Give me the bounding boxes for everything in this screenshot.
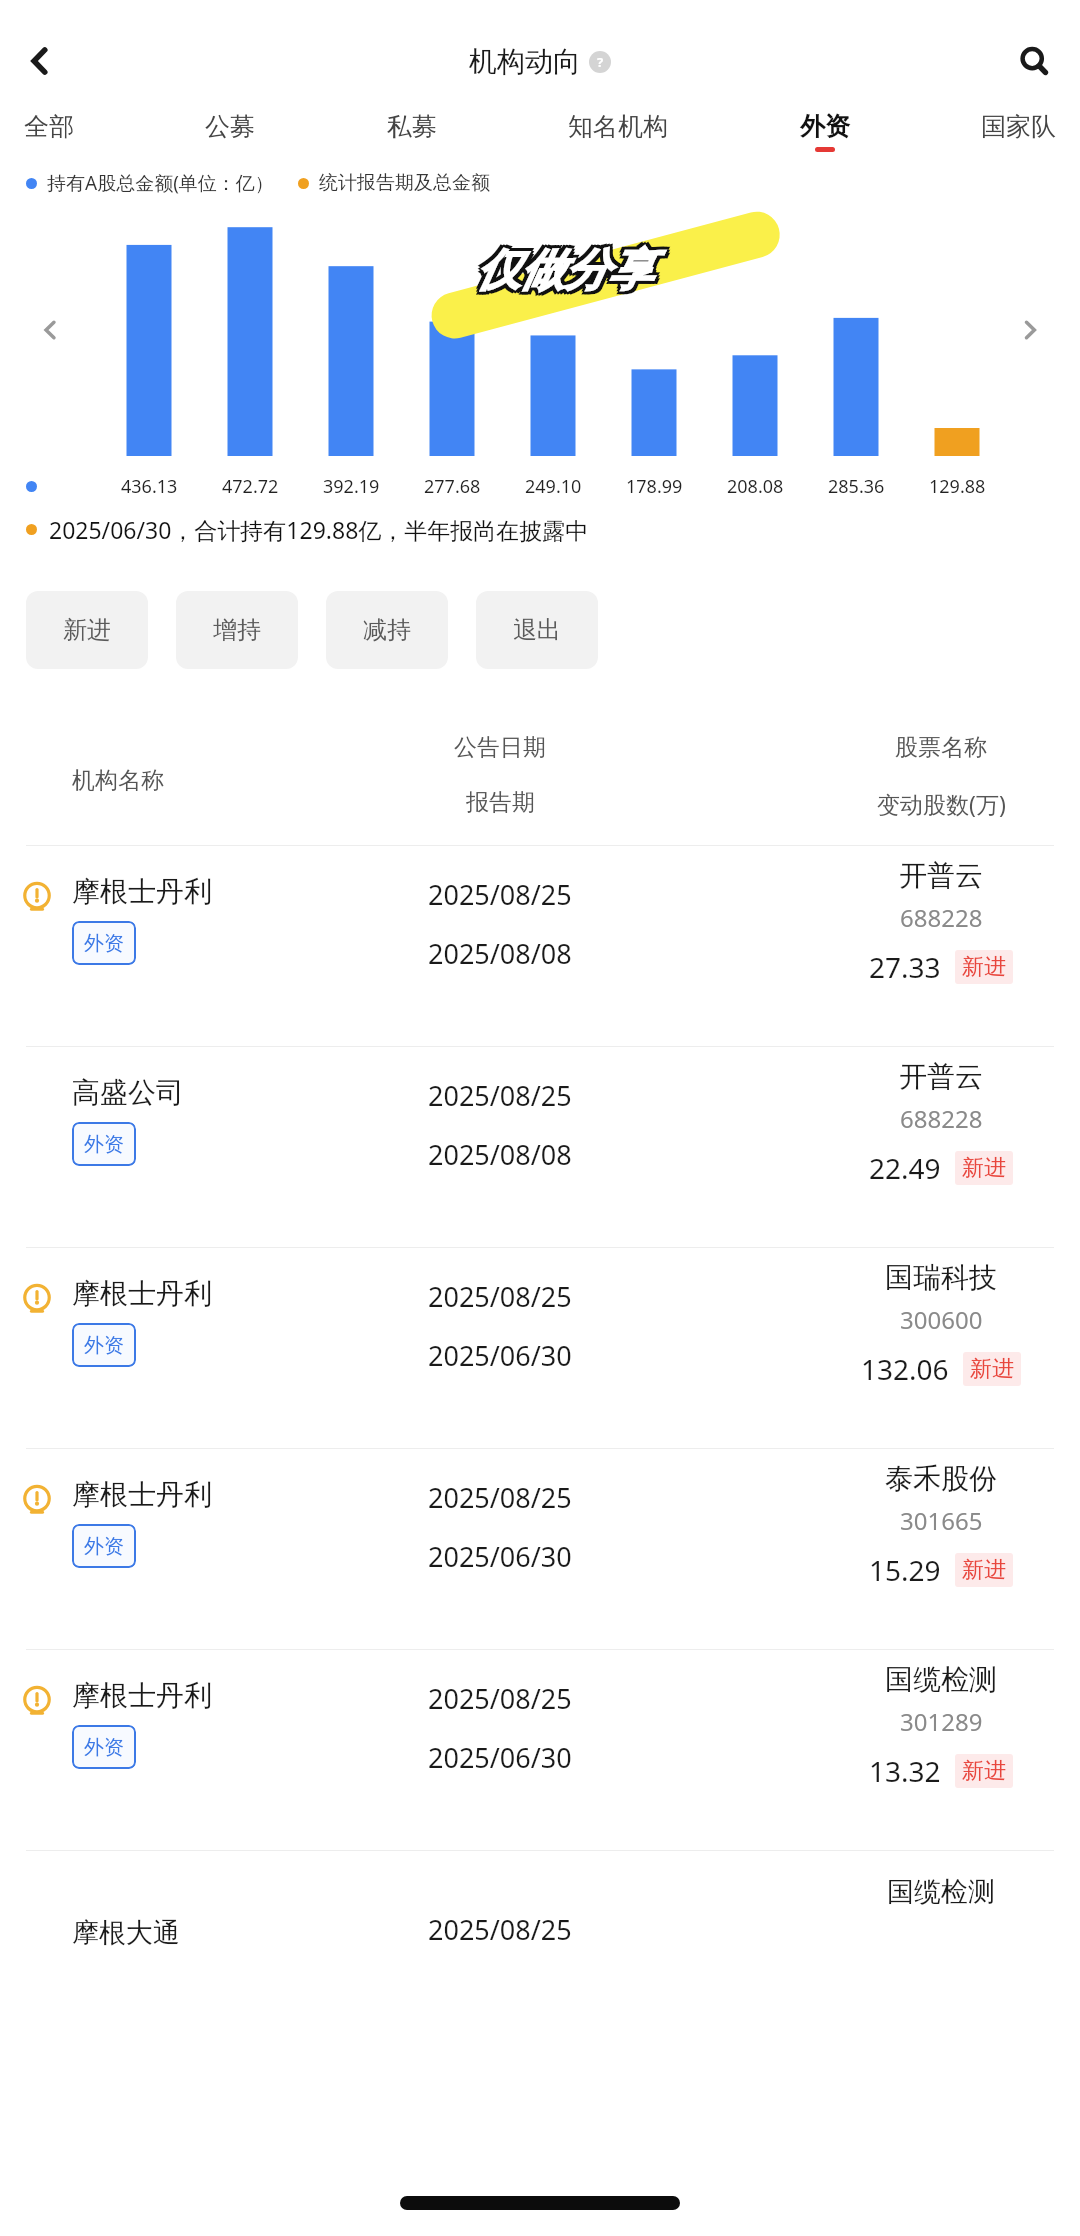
button[interactable]: 摩根士丹利 bbox=[0, 846, 1080, 1046]
staticText: 摩根士丹利 bbox=[72, 1477, 212, 1512]
staticText: 报告期 bbox=[466, 788, 535, 817]
staticText: 摩根士丹利 bbox=[72, 1276, 212, 1311]
button[interactable]: 外资 bbox=[72, 1323, 136, 1367]
staticText: 外资 bbox=[800, 111, 850, 142]
staticText: 2025/08/25 bbox=[428, 1680, 572, 1717]
staticText: 2025/08/08 bbox=[428, 1136, 572, 1173]
staticText: 国缆检测 bbox=[887, 1875, 995, 1909]
button[interactable]: 私募 bbox=[381, 107, 443, 156]
staticText: 国家队 bbox=[981, 111, 1056, 142]
staticText: 仅做分享 bbox=[479, 243, 655, 298]
button[interactable]: Next bbox=[1002, 302, 1058, 358]
button[interactable]: 知名机构 bbox=[562, 107, 674, 156]
button[interactable]: 外资 bbox=[72, 1524, 136, 1568]
staticText: 知名机构 bbox=[568, 111, 668, 142]
staticText: 国瑞科技 bbox=[885, 1260, 997, 1295]
staticText: 仅做分享 bbox=[476, 246, 652, 301]
staticText: 132.06 bbox=[861, 1350, 949, 1388]
staticText: 688228 bbox=[900, 1102, 983, 1135]
staticText: 国缆检测 bbox=[885, 1662, 997, 1697]
staticText: 外资 bbox=[84, 1534, 124, 1559]
staticText: 129.88 bbox=[929, 474, 986, 499]
staticText: 新进 bbox=[962, 953, 1006, 981]
staticText: 摩根士丹利 bbox=[72, 874, 212, 909]
staticText: 全部 bbox=[24, 111, 74, 142]
button[interactable]: 高盛公司 bbox=[0, 1047, 1080, 1247]
button[interactable]: 外资 bbox=[72, 1122, 136, 1166]
staticText: 436.13 bbox=[121, 474, 178, 499]
staticText: 新进 bbox=[970, 1355, 1014, 1383]
staticText: 开普云 bbox=[899, 858, 983, 893]
button[interactable]: Search bbox=[1002, 29, 1066, 93]
staticText: 2025/08/25 bbox=[428, 876, 572, 913]
staticText: 22.49 bbox=[869, 1149, 941, 1187]
button[interactable]: 退出 bbox=[476, 591, 598, 669]
staticText: 公告日期 bbox=[454, 733, 546, 762]
button[interactable]: 增持 bbox=[176, 591, 298, 669]
staticText: 仅做分享 bbox=[476, 240, 652, 295]
button[interactable]: 公募 bbox=[199, 107, 261, 156]
staticText: 退出 bbox=[513, 615, 561, 645]
staticText: 392.19 bbox=[323, 474, 380, 499]
staticText: 2025/06/30，合计持有129.88亿，半年报尚在披露中 bbox=[49, 514, 589, 545]
staticText: 仅做分享 bbox=[476, 243, 652, 298]
staticText: 减持 bbox=[363, 615, 411, 645]
staticText: 301665 bbox=[900, 1504, 983, 1537]
staticText: 2025/06/30 bbox=[428, 1337, 572, 1374]
staticText: 2025/06/30 bbox=[428, 1538, 572, 1575]
staticText: 301289 bbox=[900, 1705, 983, 1738]
staticText: 472.72 bbox=[222, 474, 279, 499]
button[interactable]: 减持 bbox=[326, 591, 448, 669]
staticText: 178.99 bbox=[626, 474, 683, 499]
staticText: 机构名称 bbox=[72, 766, 164, 795]
staticText: 开普云 bbox=[899, 1059, 983, 1094]
staticText: 2025/08/25 bbox=[428, 1077, 572, 1114]
staticText: 新进 bbox=[962, 1154, 1006, 1182]
staticText: 13.32 bbox=[869, 1752, 941, 1790]
staticText: 2025/08/25 bbox=[428, 1911, 572, 1948]
button[interactable]: 外资 bbox=[794, 107, 856, 156]
staticText: 仅做分享 bbox=[473, 243, 649, 298]
staticText: 摩根大通 bbox=[72, 1916, 180, 1950]
button[interactable]: 摩根士丹利 bbox=[0, 1248, 1080, 1448]
staticText: 仅做分享 bbox=[479, 240, 655, 295]
staticText: 2025/08/25 bbox=[428, 1278, 572, 1315]
staticText: 2025/08/25 bbox=[428, 1479, 572, 1516]
staticText: 277.68 bbox=[424, 474, 481, 499]
button[interactable]: Help bbox=[589, 51, 611, 73]
staticText: 仅做分享 bbox=[473, 246, 649, 301]
staticText: 高盛公司 bbox=[72, 1075, 184, 1110]
staticText: 私募 bbox=[387, 111, 437, 142]
staticText: 持有A股总金额(单位：亿） bbox=[47, 170, 274, 196]
button[interactable]: 国家队 bbox=[975, 107, 1062, 156]
staticText: 增持 bbox=[213, 615, 261, 645]
button[interactable]: 全部 bbox=[18, 107, 80, 156]
button[interactable]: 外资 bbox=[72, 1725, 136, 1769]
staticText: 285.36 bbox=[828, 474, 885, 499]
staticText: 泰禾股份 bbox=[885, 1461, 997, 1496]
staticText: 外资 bbox=[84, 1132, 124, 1157]
staticText: 机构动向 bbox=[469, 44, 581, 79]
button[interactable]: Previous bbox=[22, 302, 78, 358]
staticText: 新进 bbox=[962, 1757, 1006, 1785]
staticText: 公募 bbox=[205, 111, 255, 142]
button[interactable]: 外资 bbox=[72, 921, 136, 965]
staticText: 208.08 bbox=[727, 474, 784, 499]
staticText: 15.29 bbox=[869, 1551, 941, 1589]
staticText: 688228 bbox=[900, 901, 983, 934]
button[interactable]: 新进 bbox=[26, 591, 148, 669]
staticText: 股票名称 bbox=[895, 733, 987, 762]
staticText: 仅做分享 bbox=[479, 246, 655, 301]
staticText: 摩根士丹利 bbox=[72, 1678, 212, 1713]
button[interactable]: 摩根士丹利 bbox=[0, 1650, 1080, 1850]
staticText: 外资 bbox=[84, 931, 124, 956]
staticText: 300600 bbox=[900, 1303, 983, 1336]
button[interactable]: 摩根士丹利 bbox=[0, 1449, 1080, 1649]
staticText: ? bbox=[597, 53, 604, 71]
staticText: 变动股数(万) bbox=[877, 788, 1006, 819]
staticText: 2025/08/08 bbox=[428, 935, 572, 972]
staticText: 249.10 bbox=[525, 474, 582, 499]
staticText: 新进 bbox=[962, 1556, 1006, 1584]
button[interactable]: Back bbox=[8, 29, 72, 93]
staticText: 新进 bbox=[63, 615, 111, 645]
